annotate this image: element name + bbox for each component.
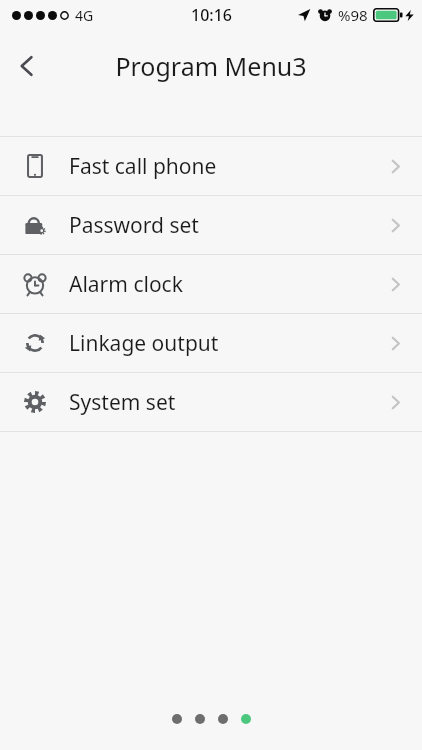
staticText: %98 — [338, 5, 368, 25]
staticText: 4G — [75, 6, 94, 25]
button[interactable]: Password set — [0, 196, 422, 254]
button[interactable]: Alarm clock — [0, 255, 422, 313]
staticText: System set — [69, 388, 387, 417]
staticText: Program Menu3 — [115, 49, 307, 83]
button[interactable]: Fast call phone — [0, 137, 422, 195]
button[interactable]: Page 3 — [218, 714, 228, 724]
staticText: Alarm clock — [69, 270, 387, 299]
staticText: Linkage output — [69, 329, 387, 358]
button[interactable]: Back — [0, 39, 54, 93]
button[interactable]: Page 2 — [195, 714, 205, 724]
button[interactable]: Page 1 — [172, 714, 182, 724]
button[interactable]: Linkage output — [0, 314, 422, 372]
button[interactable]: Page 4 — [241, 714, 251, 724]
staticText: Password set — [69, 211, 387, 240]
button[interactable]: System set — [0, 373, 422, 431]
staticText: 10:16 — [191, 4, 232, 26]
staticText: Fast call phone — [69, 152, 387, 181]
